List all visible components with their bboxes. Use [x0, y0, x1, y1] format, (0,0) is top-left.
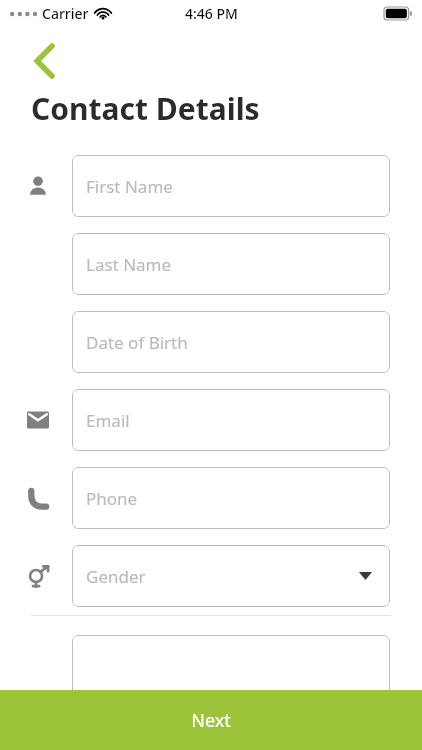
- button[interactable]: First Name: [72, 155, 390, 217]
- staticText: Carrier: [42, 4, 89, 23]
- staticText: Last Name: [86, 253, 172, 276]
- button[interactable]: Last Name: [72, 233, 390, 295]
- button[interactable]: Gender: [72, 545, 390, 607]
- staticText: Phone: [86, 487, 138, 510]
- button[interactable]: Date of Birth: [72, 311, 390, 373]
- staticText: Date of Birth: [86, 331, 188, 354]
- button[interactable]: Next: [0, 690, 422, 750]
- button[interactable]: [72, 635, 390, 697]
- staticText: Next: [191, 708, 231, 733]
- staticText: Gender: [86, 565, 146, 588]
- button[interactable]: Phone: [72, 467, 390, 529]
- staticText: Contact Details: [31, 88, 260, 129]
- staticText: 4:46 PM: [185, 4, 238, 23]
- button[interactable]: Back: [22, 38, 68, 84]
- staticText: First Name: [86, 175, 173, 198]
- button[interactable]: Email: [72, 389, 390, 451]
- staticText: Email: [86, 409, 130, 432]
